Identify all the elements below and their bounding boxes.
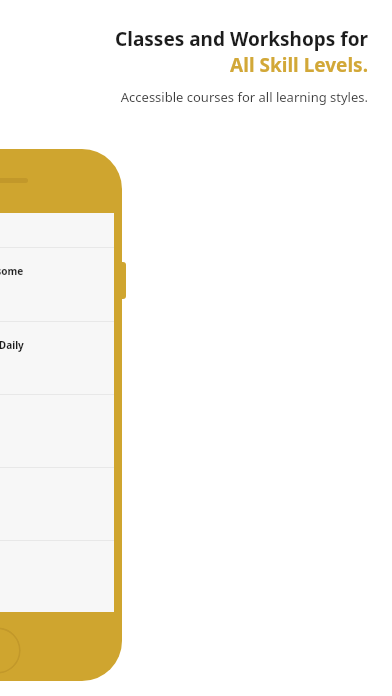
staticText: All Skill Levels.	[24, 52, 368, 78]
staticText: Getting Started with Daily	[0, 338, 24, 352]
button[interactable]: Getting Started with Daily	[0, 321, 114, 394]
staticText: Classes and Workshops for	[24, 26, 368, 52]
button[interactable]: Home	[0, 627, 21, 674]
button[interactable]: Welcome to the Awesome	[0, 247, 114, 321]
staticText: Welcome to the Awesome	[0, 264, 24, 278]
staticText: Accessible courses for all learning styl…	[24, 88, 368, 106]
other: Power button	[120, 262, 126, 299]
